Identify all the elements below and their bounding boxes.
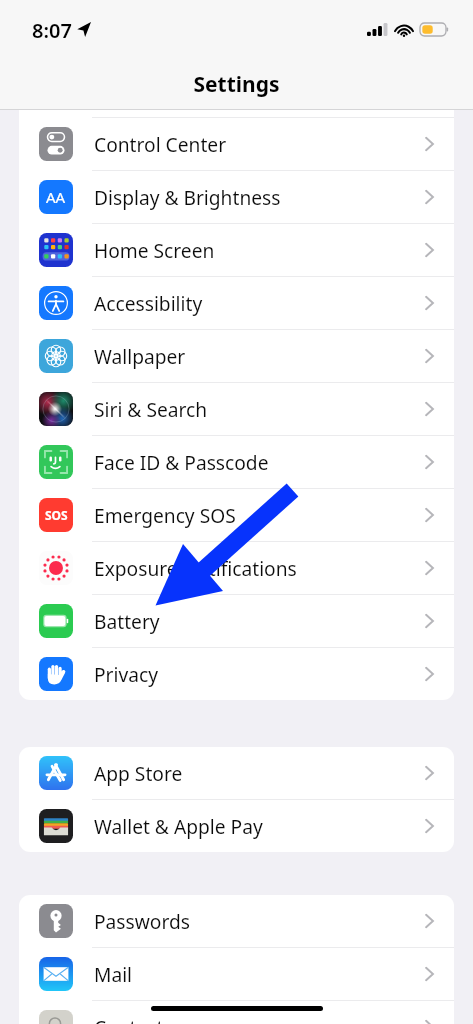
staticText: Contacts (94, 1014, 173, 1024)
button[interactable]: Mail (19, 948, 454, 1000)
button[interactable]: App Store (19, 747, 454, 799)
staticText: Accessibility (94, 290, 203, 316)
staticText: Exposure Notifications (94, 555, 297, 581)
staticText: Face ID & Passcode (94, 449, 269, 475)
button[interactable]: AA (19, 171, 454, 223)
staticText: Control Center (94, 131, 227, 157)
staticText: AA (46, 187, 66, 207)
staticText: App Store (94, 760, 183, 786)
staticText: Wallet & Apple Pay (94, 813, 263, 839)
button[interactable]: Home Screen (19, 224, 454, 276)
staticText: Home Screen (94, 237, 215, 263)
staticText: Emergency SOS (94, 502, 236, 528)
button[interactable]: Siri & Search (19, 383, 454, 435)
staticText: Mail (94, 961, 133, 987)
staticText: 8:07 (32, 17, 72, 44)
staticText: Display & Brightness (94, 184, 281, 210)
staticText: Battery (94, 608, 160, 634)
staticText: SOS (45, 507, 68, 523)
button[interactable]: Accessibility (19, 277, 454, 329)
button[interactable]: Battery (19, 595, 454, 647)
staticText: Settings (193, 70, 280, 99)
button[interactable]: Privacy (19, 648, 454, 700)
button[interactable]: Wallpaper (19, 330, 454, 382)
button[interactable]: Control Center (19, 118, 454, 170)
button[interactable]: SOS (19, 489, 454, 541)
button[interactable]: Exposure Notifications (19, 542, 454, 594)
staticText: Siri & Search (94, 396, 208, 422)
button[interactable]: Wallet & Apple Pay (19, 800, 454, 852)
button[interactable]: Contacts (19, 1001, 454, 1024)
staticText: Privacy (94, 661, 158, 687)
staticText: Wallpaper (94, 343, 186, 369)
button[interactable]: Face ID & Passcode (19, 436, 454, 488)
button[interactable]: Passwords (19, 895, 454, 947)
staticText: Passwords (94, 908, 190, 934)
